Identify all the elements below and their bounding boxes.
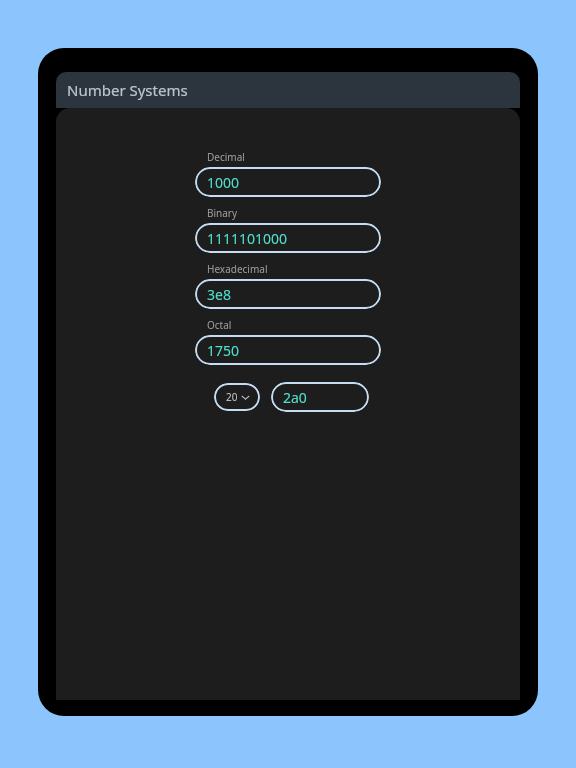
- button[interactable]: 1111101000: [195, 223, 381, 253]
- staticText: Octal: [207, 318, 232, 332]
- staticText: 1750: [207, 341, 240, 360]
- staticText: 20: [226, 390, 238, 404]
- button[interactable]: 2a0: [271, 382, 369, 412]
- staticText: Binary: [207, 206, 238, 220]
- button[interactable]: 1000: [195, 167, 381, 197]
- staticText: Number Systems: [67, 80, 188, 100]
- button[interactable]: 3e8: [195, 279, 381, 309]
- button[interactable]: 20: [214, 383, 260, 411]
- staticText: Decimal: [207, 150, 245, 164]
- staticText: 3e8: [207, 285, 231, 304]
- staticText: 1111101000: [207, 229, 288, 248]
- button[interactable]: 1750: [195, 335, 381, 365]
- staticText: 1000: [207, 173, 240, 192]
- staticText: Hexadecimal: [207, 262, 268, 276]
- staticText: 2a0: [283, 388, 307, 407]
- other: Select base: [214, 383, 260, 411]
